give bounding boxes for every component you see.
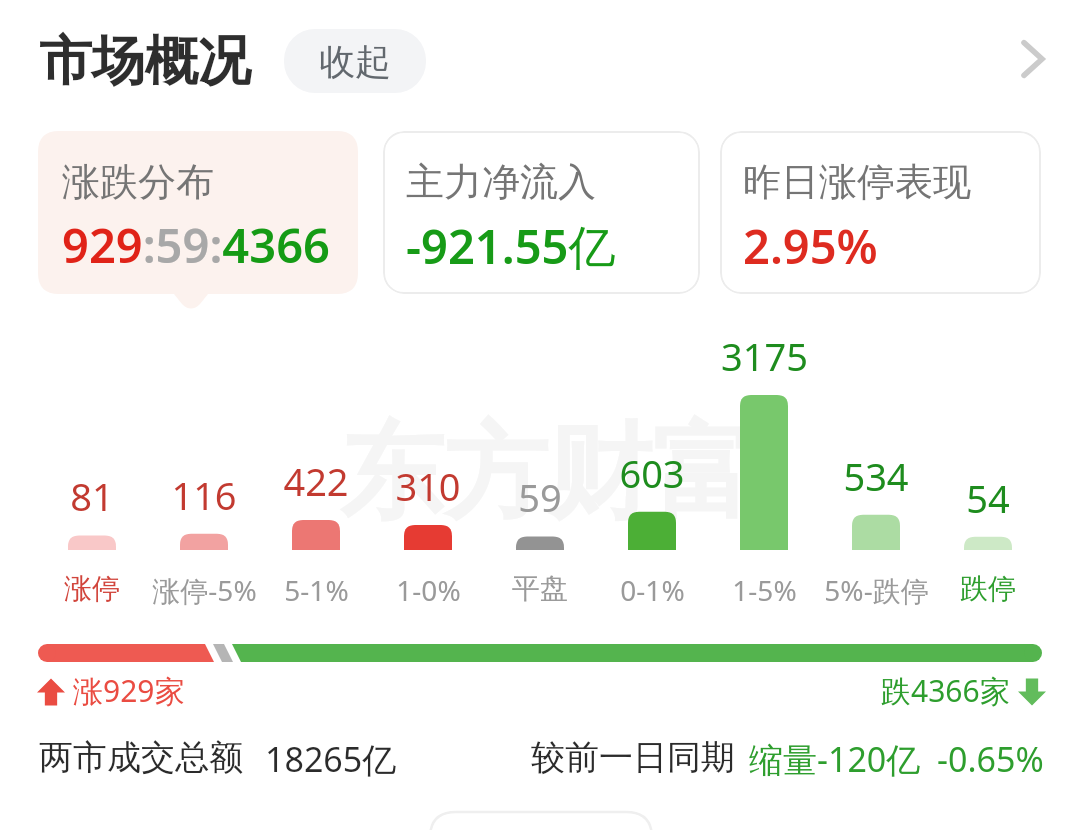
button[interactable]: 主力净流入 — [383, 131, 700, 294]
staticText: 涨929家 — [73, 670, 185, 711]
staticText: 310 — [395, 460, 461, 512]
staticText: 两市成交总额 — [39, 736, 243, 779]
staticText: 涨跌分布 — [62, 158, 214, 206]
staticText: 较前一日同期 — [531, 736, 735, 779]
button[interactable]: 市场概况 — [30, 18, 270, 98]
button[interactable]: 昨日涨停表现 — [720, 131, 1041, 294]
button[interactable]: 涨跌分布 — [38, 131, 358, 294]
staticText: 收起 — [319, 39, 391, 84]
staticText: 东方财富 — [340, 408, 756, 539]
staticText: 涨停 — [64, 571, 120, 606]
staticText: 534 — [843, 450, 909, 502]
button[interactable]: 涨929家 — [37, 670, 185, 711]
staticText: 市场概况 — [39, 28, 251, 95]
staticText: 0-1% — [620, 571, 685, 609]
button[interactable]: 收起 — [284, 29, 426, 93]
staticText: 缩量-120亿 — [749, 736, 921, 782]
staticText: 2.95% — [743, 214, 878, 278]
staticText: -0.65% — [937, 736, 1044, 782]
staticText: 平盘 — [512, 571, 568, 606]
staticText: 主力净流入 — [406, 158, 596, 206]
staticText: 18265亿 — [265, 736, 397, 782]
staticText: 5-1% — [284, 571, 349, 609]
staticText: 跌4366家 — [881, 670, 1010, 711]
staticText: 1-5% — [732, 571, 797, 609]
staticText: 跌停 — [960, 571, 1016, 606]
button[interactable]: Expand market overview — [1000, 26, 1066, 92]
staticText: 603 — [619, 447, 685, 499]
staticText: 54 — [966, 472, 1010, 524]
staticText: 昨日涨停表现 — [743, 158, 971, 206]
button[interactable]: 跌4366家 — [881, 670, 1046, 711]
staticText: 422 — [283, 455, 349, 507]
staticText: 1-0% — [396, 571, 461, 609]
staticText: 81 — [70, 470, 114, 522]
staticText: 59 — [518, 471, 562, 523]
staticText: 涨停-5% — [152, 571, 257, 609]
staticText: 3175 — [721, 330, 808, 382]
staticText: 929:59:4366 — [62, 213, 330, 277]
staticText: -921.55亿 — [406, 214, 616, 278]
staticText: 116 — [171, 469, 237, 521]
staticText: 5%-跌停 — [824, 571, 929, 609]
